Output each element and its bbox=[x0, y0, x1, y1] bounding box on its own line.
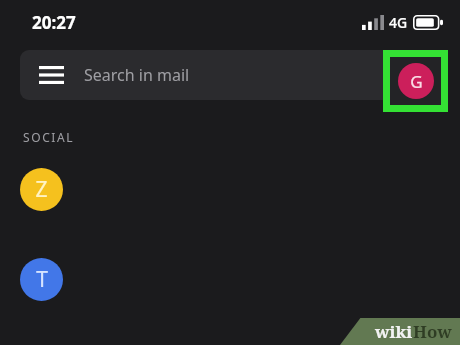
staticText: SOCIAL bbox=[23, 129, 75, 145]
staticText: wiki bbox=[375, 320, 413, 343]
staticText: G bbox=[410, 70, 423, 93]
button[interactable]: T bbox=[0, 257, 460, 301]
staticText: How bbox=[413, 320, 452, 343]
staticText: 4G bbox=[389, 13, 408, 32]
button[interactable]: Open navigation menu bbox=[20, 50, 440, 100]
staticText: 20:27 bbox=[32, 11, 76, 34]
button[interactable]: Open navigation menu bbox=[38, 64, 64, 86]
button[interactable]: Z bbox=[0, 167, 460, 211]
button[interactable]: Account profile G bbox=[390, 57, 441, 105]
staticText: Search in mail bbox=[84, 64, 190, 86]
staticText: T bbox=[36, 265, 48, 294]
staticText: Z bbox=[35, 175, 48, 204]
